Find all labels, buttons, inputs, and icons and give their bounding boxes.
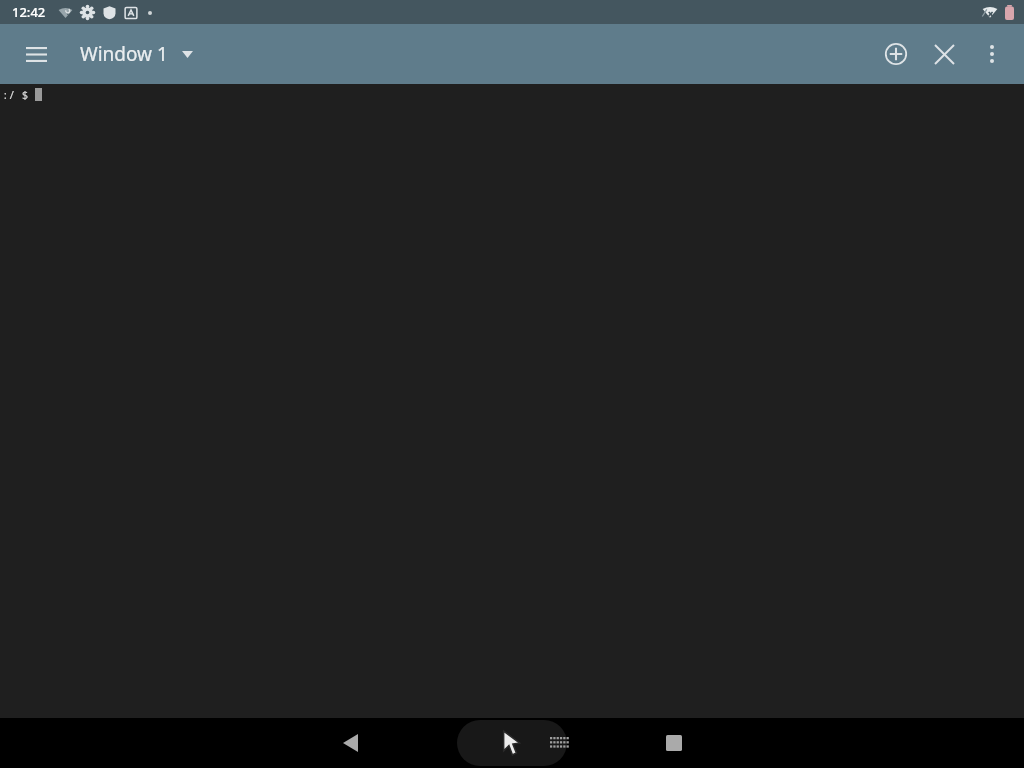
staticText: Window 1 [80,41,168,67]
staticText: 12:42 [12,3,46,21]
button[interactable]: Show keyboard [538,721,582,765]
button[interactable]: New window [872,30,920,78]
button[interactable]: Window 1 [72,35,201,73]
button[interactable]: More options [968,30,1016,78]
button[interactable]: Open navigation menu [12,30,60,78]
button[interactable]: Home [488,719,536,767]
button[interactable]: Recent apps [650,719,698,767]
staticText: :/ $ [2,87,35,102]
button[interactable]: Close window [920,30,968,78]
button[interactable]: Back [326,719,374,767]
